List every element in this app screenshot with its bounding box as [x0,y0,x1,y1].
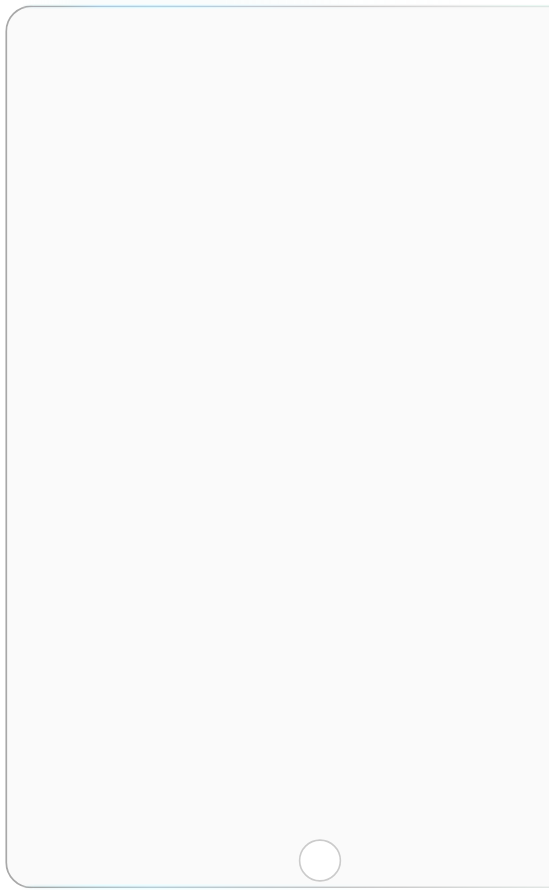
button[interactable]: Tablet screen protector, full screen vie… [0,0,549,893]
button[interactable]: Home button cut-out [299,839,341,881]
